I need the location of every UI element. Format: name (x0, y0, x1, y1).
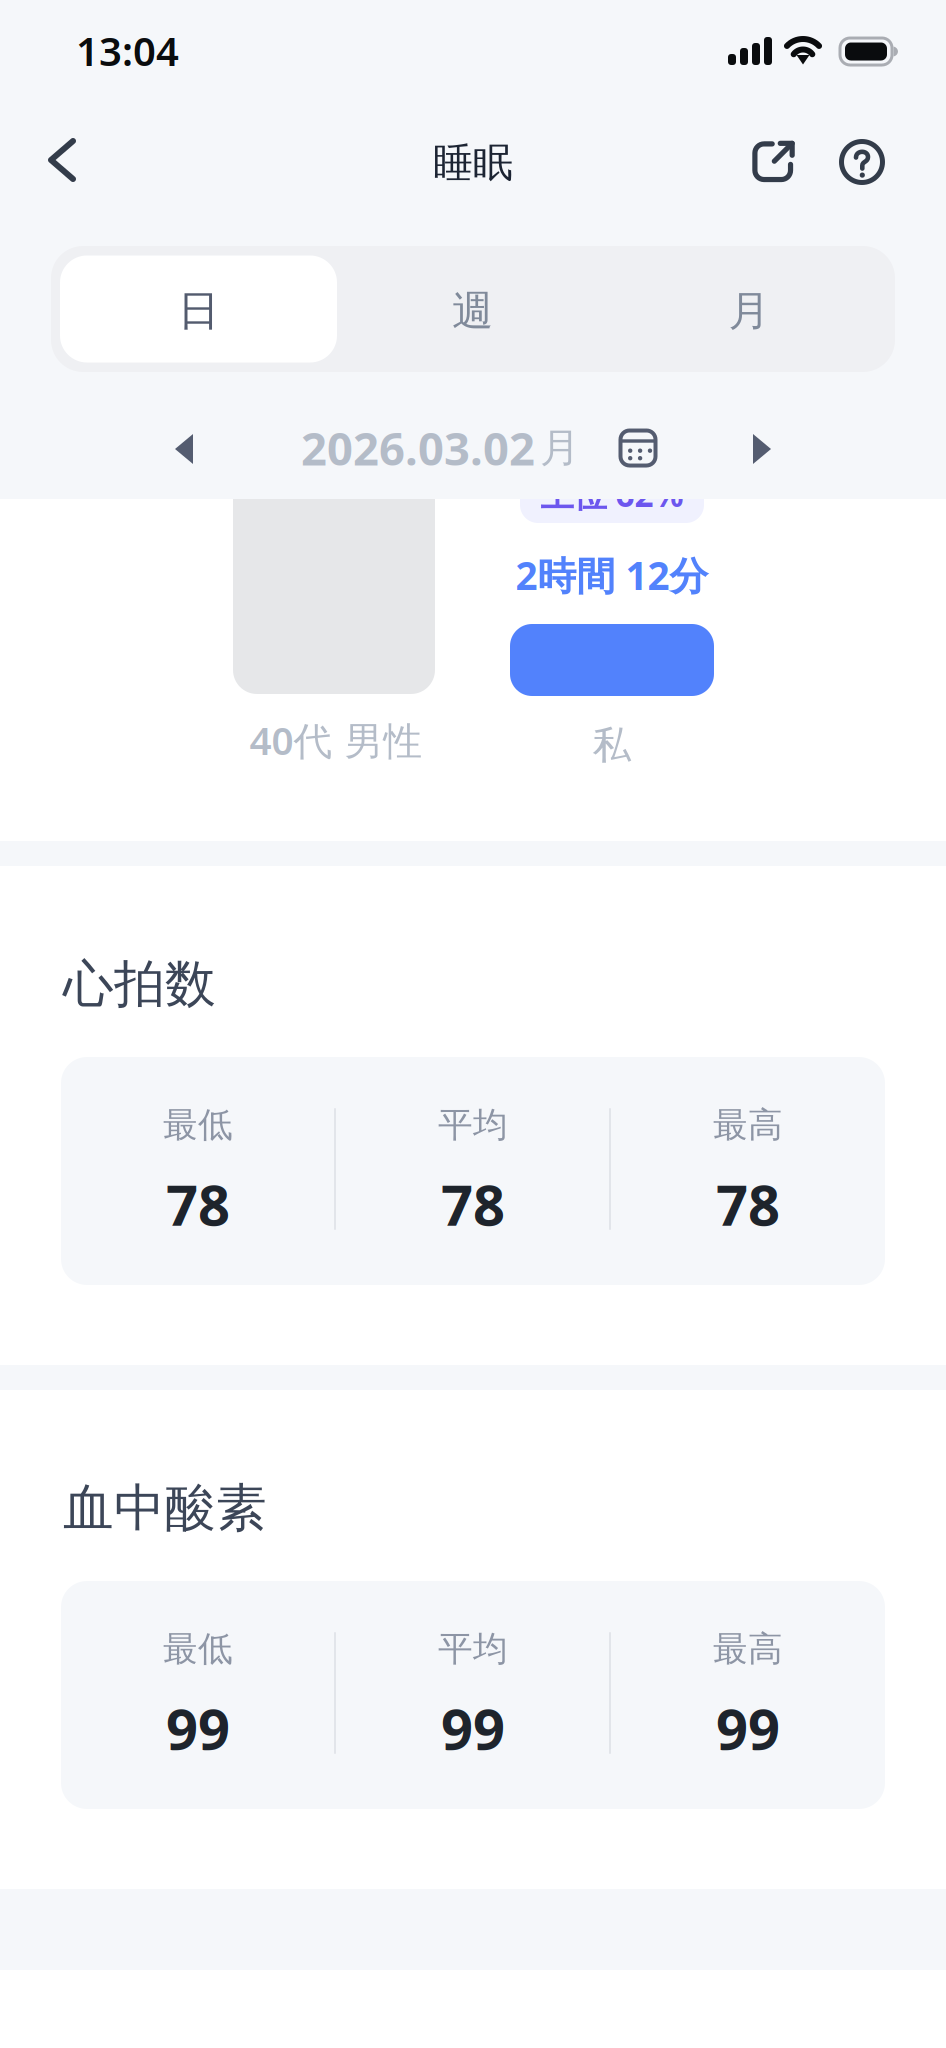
button[interactable]: 次の日 (731, 418, 793, 480)
staticText: 日 (178, 286, 219, 336)
button[interactable]: 前の日 (153, 418, 215, 480)
staticText: 週 (452, 286, 493, 336)
staticText: 血中酸素 (63, 1477, 267, 1539)
staticText: 平均 (438, 1104, 508, 1146)
button[interactable]: 日 (51, 246, 332, 372)
staticText: 平均 (438, 1628, 508, 1670)
button[interactable]: 戻る (14, 112, 110, 208)
button[interactable]: 2026.03.02 (301, 417, 580, 479)
staticText: 78 (716, 1167, 780, 1241)
staticText: 78 (441, 1167, 505, 1241)
staticText: 99 (716, 1691, 780, 1765)
staticText: 月 (728, 286, 769, 336)
staticText: 最高 (713, 1628, 783, 1670)
staticText: 13:04 (76, 24, 179, 77)
staticText: 40代 男性 (249, 714, 422, 766)
staticText: 心拍数 (63, 953, 216, 1015)
button[interactable]: カレンダー (609, 419, 667, 477)
staticText: 月 (540, 423, 580, 472)
staticText: 上位 62% (540, 472, 683, 516)
staticText: 2時間 12分 (515, 549, 708, 601)
staticText: 2026.03.02 (301, 418, 535, 478)
button[interactable]: 週 (332, 246, 613, 372)
button[interactable]: 共有 (733, 122, 813, 202)
staticText: 99 (166, 1691, 230, 1765)
staticText: 78 (166, 1167, 230, 1241)
button[interactable]: 月 (613, 246, 895, 372)
staticText: 私 (592, 721, 631, 769)
button[interactable]: ヘルプ (822, 122, 902, 202)
staticText: 99 (441, 1691, 505, 1765)
staticText: 最高 (713, 1104, 783, 1146)
staticText: 最低 (163, 1104, 233, 1146)
staticText: 最低 (163, 1628, 233, 1670)
staticText: 睡眠 (433, 138, 513, 187)
